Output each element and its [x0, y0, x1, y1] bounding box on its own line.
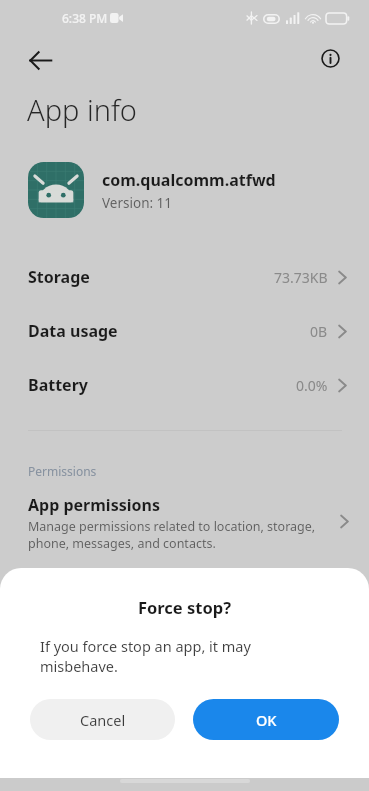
button[interactable]: App permissions: [0, 489, 369, 559]
staticText: Battery: [28, 374, 88, 396]
staticText: App permissions: [28, 494, 160, 516]
staticText: 0.0%: [296, 376, 328, 395]
staticText: Manage permissions related to location, …: [28, 518, 316, 551]
staticText: If you force stop an app, it may misbeha…: [40, 636, 251, 677]
staticText: Permissions: [28, 463, 97, 479]
button[interactable]: Data usage: [0, 309, 369, 353]
staticText: com.qualcomm.atfwd: [102, 169, 276, 191]
button[interactable]: Cancel: [30, 699, 175, 740]
staticText: OK: [256, 710, 277, 730]
button[interactable]: App details: [308, 36, 352, 80]
staticText: 6:38 PM: [62, 10, 108, 26]
staticText: Force stop?: [0, 596, 369, 618]
button[interactable]: Battery: [0, 363, 369, 407]
staticText: App info: [27, 90, 137, 129]
staticText: Version: 11: [102, 194, 173, 212]
button[interactable]: OK: [193, 699, 339, 740]
staticText: 0B: [310, 322, 328, 341]
staticText: Data usage: [28, 320, 118, 342]
staticText: Cancel: [80, 710, 126, 730]
staticText: 73.73KB: [274, 268, 328, 287]
staticText: Storage: [28, 266, 90, 288]
button[interactable]: Back: [18, 38, 62, 82]
button[interactable]: Storage: [0, 255, 369, 299]
